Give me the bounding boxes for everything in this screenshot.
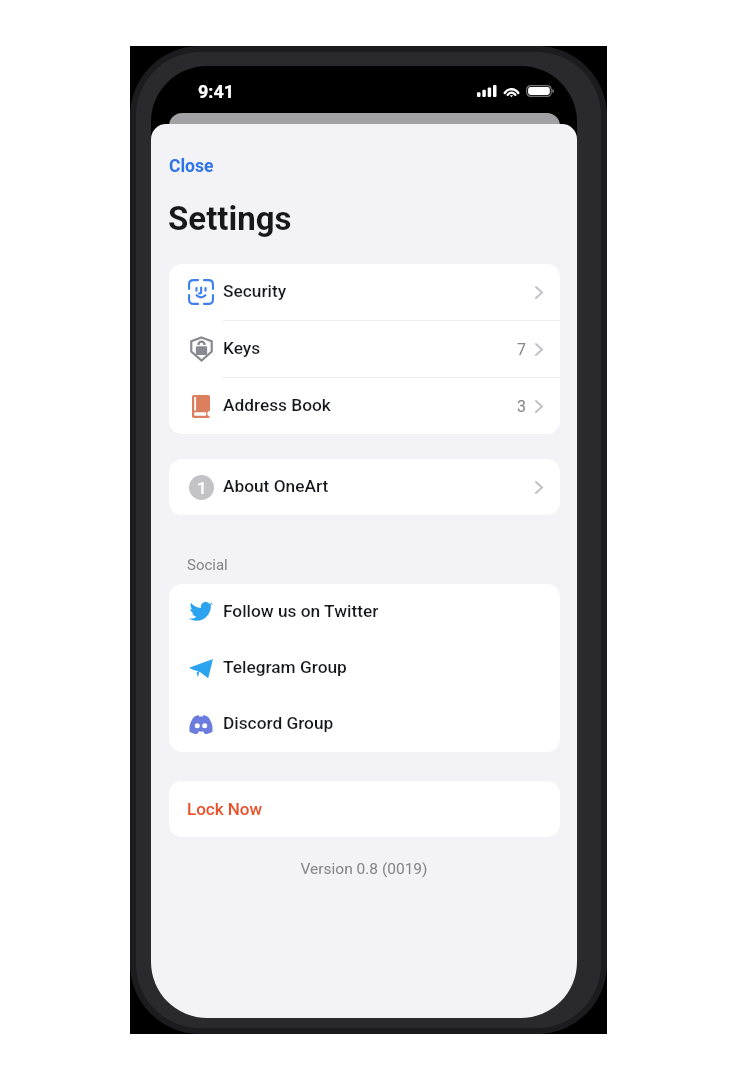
staticText: Telegram Group (223, 657, 347, 677)
staticText: Address Book (223, 395, 331, 415)
button[interactable]: Lock Now (169, 781, 560, 837)
button[interactable]: Security (169, 264, 560, 320)
button[interactable]: Discord Group (169, 696, 560, 752)
button[interactable]: Telegram Group (169, 640, 560, 696)
staticText: 7 (517, 340, 526, 359)
button[interactable]: 1 (169, 459, 560, 515)
staticText: 3 (517, 397, 526, 416)
staticText: Close (169, 156, 214, 177)
button[interactable]: Address Book (169, 378, 560, 434)
button[interactable]: Follow us on Twitter (169, 584, 560, 640)
staticText: Social (187, 556, 228, 574)
staticText: 1 (197, 478, 207, 498)
staticText: Security (223, 281, 287, 301)
staticText: Settings (168, 199, 292, 238)
staticText: Follow us on Twitter (223, 601, 379, 621)
button[interactable]: Close (164, 152, 219, 181)
button[interactable]: Keys (169, 321, 560, 377)
staticText: Discord Group (223, 713, 334, 733)
staticText: Version 0.8 (0019) (151, 860, 577, 878)
staticText: Keys (223, 338, 261, 358)
staticText: Lock Now (187, 799, 263, 819)
staticText: 9:41 (198, 81, 235, 102)
staticText: About OneArt (223, 476, 329, 496)
